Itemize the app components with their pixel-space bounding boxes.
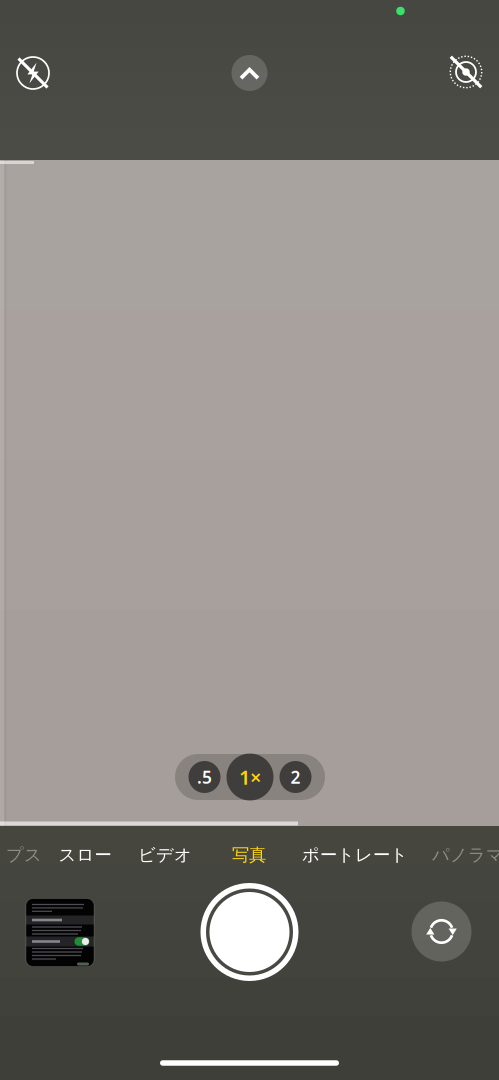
staticText: プス	[6, 844, 42, 866]
button[interactable]: 1×	[226, 754, 273, 800]
staticText: ビデオ	[138, 844, 192, 866]
button[interactable]: Flash off	[11, 51, 55, 95]
button[interactable]: More camera controls	[227, 51, 271, 95]
button[interactable]: Live Photo off	[444, 50, 488, 94]
staticText: ポートレート	[302, 844, 408, 866]
button[interactable]: Photo library	[26, 898, 94, 966]
button[interactable]: Take photo	[200, 883, 298, 981]
button[interactable]: ポートレート	[298, 834, 412, 876]
button[interactable]: パノラマ	[428, 834, 499, 876]
staticText: 2	[290, 765, 300, 788]
staticText: パノラマ	[432, 844, 499, 866]
button[interactable]: 2	[279, 754, 311, 800]
button[interactable]: プス	[2, 834, 46, 876]
button[interactable]: 写真	[228, 834, 270, 876]
staticText: 写真	[232, 844, 266, 866]
button[interactable]: ビデオ	[134, 834, 196, 876]
button[interactable]: .5	[188, 754, 220, 800]
staticText: 1×	[239, 764, 261, 790]
staticText: スロー	[58, 844, 111, 866]
button[interactable]: スロー	[54, 834, 115, 876]
button[interactable]: Switch camera	[411, 901, 471, 961]
staticText: .5	[197, 765, 212, 788]
